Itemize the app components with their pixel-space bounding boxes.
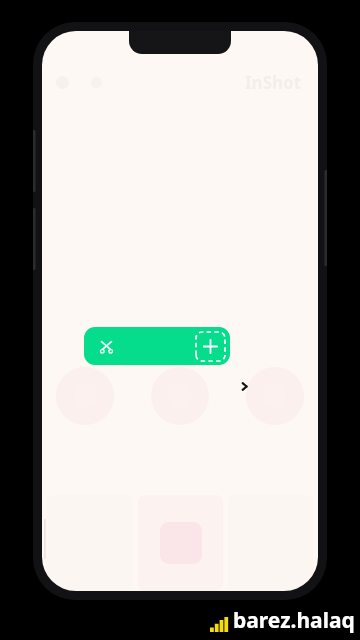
staticText: barez.halaq (233, 606, 355, 635)
button[interactable]: Video clip track (84, 327, 230, 365)
button[interactable] (246, 367, 304, 425)
button[interactable] (151, 367, 209, 425)
button[interactable] (228, 495, 313, 591)
button[interactable] (56, 367, 114, 425)
button[interactable] (138, 495, 223, 591)
button[interactable] (47, 495, 133, 591)
button[interactable]: Next (238, 380, 251, 393)
button[interactable]: Add clip (196, 332, 225, 361)
staticText: InShot (245, 71, 302, 94)
